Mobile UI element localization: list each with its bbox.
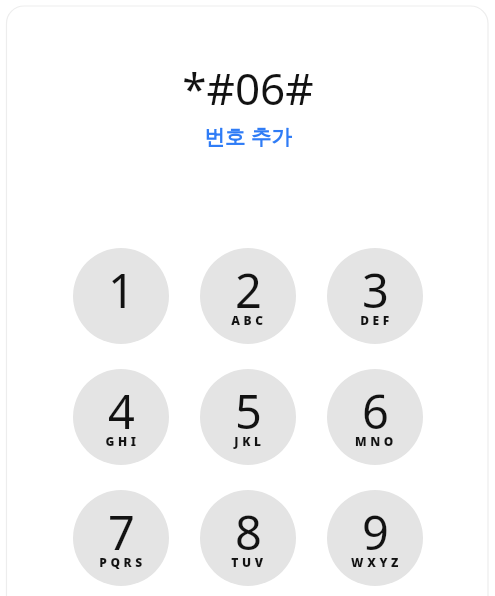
staticText: 5 <box>235 379 262 443</box>
staticText: JKL <box>234 433 265 449</box>
staticText: 번호 추가 <box>204 122 292 150</box>
staticText: 3 <box>362 258 389 322</box>
staticText: *#06# <box>182 58 314 118</box>
staticText: 6 <box>362 379 389 443</box>
button[interactable]: Dial 1 <box>73 248 169 344</box>
staticText: 4 <box>108 379 135 443</box>
button[interactable]: Dial 7 <box>73 490 169 586</box>
staticText: WXYZ <box>351 554 402 570</box>
staticText: MNO <box>355 433 397 449</box>
button[interactable]: Dial 4 <box>73 369 169 465</box>
staticText: 9 <box>362 500 389 564</box>
button[interactable]: 번호 추가 <box>198 120 298 152</box>
staticText: DEF <box>360 312 393 328</box>
staticText: 2 <box>235 258 262 322</box>
button[interactable]: Dial 6 <box>327 369 423 465</box>
staticText: 1 <box>108 258 135 322</box>
button[interactable]: Dial 5 <box>200 369 296 465</box>
staticText: 7 <box>108 500 135 564</box>
button[interactable]: Dial 9 <box>327 490 423 586</box>
staticText: GHI <box>105 433 140 449</box>
button[interactable]: Dial 3 <box>327 248 423 344</box>
staticText: PQRS <box>99 554 146 570</box>
staticText: 8 <box>235 500 262 564</box>
button[interactable]: Dial 8 <box>200 490 296 586</box>
staticText: TUV <box>231 554 267 570</box>
button[interactable]: Dial 2 <box>200 248 296 344</box>
staticText: ABC <box>231 312 267 328</box>
